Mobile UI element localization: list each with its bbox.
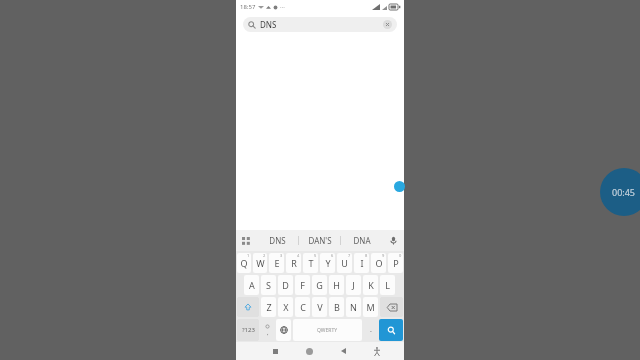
button[interactable]: S [261,275,276,295]
staticText: L [385,279,390,291]
button[interactable]: Recent apps [259,342,292,360]
staticText: T [308,257,314,269]
staticText: A [249,279,255,291]
button[interactable]: A [244,275,259,295]
staticText: ?123 [242,326,255,334]
staticText: M [366,301,375,313]
button[interactable]: G [312,275,327,295]
staticText: H [333,279,340,291]
button[interactable]: DAN'S [299,230,340,251]
button[interactable]: C [295,297,310,317]
staticText: I [360,257,364,269]
staticText: B [334,301,340,313]
button[interactable]: R [286,253,301,273]
button[interactable]: DNS [243,17,397,32]
staticText: 2 [263,253,266,258]
button[interactable]: Toolbar [236,230,256,251]
staticText: 6 [331,253,334,258]
staticText: DNS [269,235,286,246]
button[interactable]: QWERTY [293,319,362,341]
staticText: Z [266,301,272,313]
button[interactable]: Comma and settings [261,319,274,341]
button[interactable]: K [363,275,378,295]
staticText: , [267,329,269,337]
staticText: 4 [297,253,300,258]
button[interactable]: Search [379,319,403,341]
button[interactable]: DNS [256,230,298,251]
staticText: 3 [280,253,283,258]
button[interactable]: I [354,253,369,273]
button[interactable]: D [278,275,293,295]
button[interactable]: Shift [237,297,259,317]
staticText: 0 [399,253,402,258]
staticText: F [300,279,305,291]
button[interactable]: Period [364,319,377,341]
button[interactable]: U [337,253,352,273]
button[interactable]: ?123 [237,319,259,341]
staticText: ··· [280,3,285,11]
button[interactable]: Back [326,342,360,360]
button[interactable]: H [329,275,344,295]
staticText: E [274,257,280,269]
button[interactable]: Z [261,297,276,317]
staticText: . [370,325,372,335]
staticText: J [352,279,355,291]
button[interactable]: N [346,297,361,317]
button[interactable]: B [329,297,344,317]
staticText: 00:45 [612,186,636,198]
staticText: K [368,279,374,291]
staticText: D [282,279,289,291]
button[interactable]: E [269,253,284,273]
staticText: DNS [260,19,277,30]
staticText: 1 [247,253,250,258]
staticText: 5 [314,253,317,258]
staticText: N [350,301,357,313]
staticText: 8 [365,253,368,258]
button[interactable]: L [380,275,395,295]
staticText: U [341,257,348,269]
button[interactable]: W [253,253,267,273]
staticText: O [375,257,383,269]
button[interactable]: O [371,253,386,273]
staticText: S [266,279,271,291]
staticText: G [316,279,323,291]
staticText: 7 [348,253,351,258]
button[interactable]: V [312,297,327,317]
button[interactable]: Backspace [380,297,403,317]
staticText: 18:57 [240,3,256,11]
staticText: X [283,301,289,313]
staticText: Q [240,257,248,269]
staticText: P [393,257,399,269]
button[interactable]: J [346,275,361,295]
staticText: R [291,257,297,269]
staticText: QWERTY [317,327,338,334]
staticText: W [256,257,265,269]
button[interactable]: Q [237,253,251,273]
button[interactable]: Home [292,342,326,360]
button[interactable]: F [295,275,310,295]
staticText: Y [325,257,331,269]
button[interactable]: Accessibility menu [360,342,394,360]
button[interactable]: X [278,297,293,317]
button[interactable]: DNA [341,230,382,251]
staticText: V [317,301,323,313]
button[interactable]: M [363,297,378,317]
staticText: DNA [353,235,371,246]
button[interactable]: Clear query [383,20,392,29]
staticText: DAN'S [308,235,332,246]
button[interactable]: T [303,253,318,273]
button[interactable]: Change language [276,319,291,341]
button[interactable]: P [388,253,403,273]
button[interactable]: Y [320,253,335,273]
button[interactable]: Voice input [382,230,404,251]
staticText: C [300,301,306,313]
staticText: 9 [382,253,385,258]
